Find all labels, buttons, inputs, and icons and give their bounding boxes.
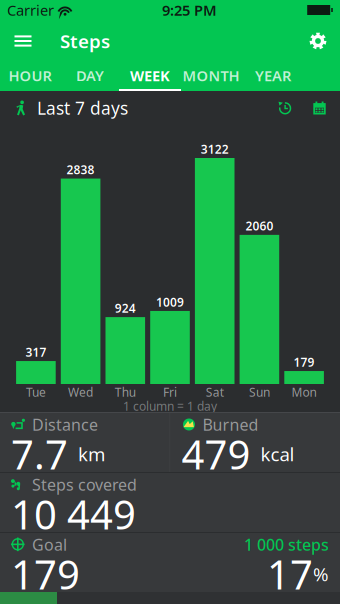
staticText: Goal [32,534,67,555]
staticText: MONTH [182,66,239,85]
staticText: Distance [32,414,98,435]
staticText: Tue [26,384,46,400]
staticText: Mon [292,384,317,400]
staticText: Last 7 days [37,96,128,119]
button[interactable]: History [267,93,303,123]
staticText: HOUR [8,66,51,85]
staticText: 924 [115,300,136,316]
staticText: Thu [115,384,136,400]
button[interactable]: Menu [0,20,46,62]
button[interactable]: Distance [0,413,169,472]
staticText: 7.7 [11,427,68,480]
staticText: % [313,562,329,586]
staticText: Burned [202,414,258,435]
button[interactable]: WEEK [120,62,180,91]
staticText: Sat [206,384,224,400]
button[interactable]: Settings [296,20,340,62]
staticText: km [68,442,105,466]
staticText: 9:25 PM [162,0,217,20]
staticText: Carrier [7,0,54,20]
staticText: 1009 [156,294,184,310]
staticText: Sun [249,384,270,400]
staticText: 479 [181,427,250,480]
staticText: DAY [76,66,104,85]
staticText: 2060 [245,218,273,234]
button[interactable]: HOUR [0,62,60,91]
staticText: 10 449 [11,487,136,540]
staticText: 3122 [201,141,229,157]
button[interactable]: Calendar [303,93,336,123]
button[interactable]: DAY [60,62,120,91]
staticText: 1 000 steps [244,534,329,555]
staticText: 1 column = 1 day [123,398,217,414]
staticText: 179 [294,354,315,370]
staticText: Wed [68,384,93,400]
staticText: Steps [60,29,110,53]
staticText: 2838 [67,162,95,177]
button[interactable]: Goal [0,533,340,604]
staticText: YEAR [255,66,291,85]
staticText: 17 [267,547,313,600]
button[interactable]: Burned [170,413,340,472]
button[interactable]: Steps covered [0,473,340,532]
staticText: 317 [25,344,46,360]
staticText: WEEK [130,66,170,85]
staticText: 179 [11,547,80,600]
staticText: Fri [163,384,177,400]
staticText: Steps covered [32,474,137,495]
staticText: kcal [250,442,294,466]
button[interactable]: YEAR [242,62,304,91]
button[interactable]: MONTH [180,62,242,91]
